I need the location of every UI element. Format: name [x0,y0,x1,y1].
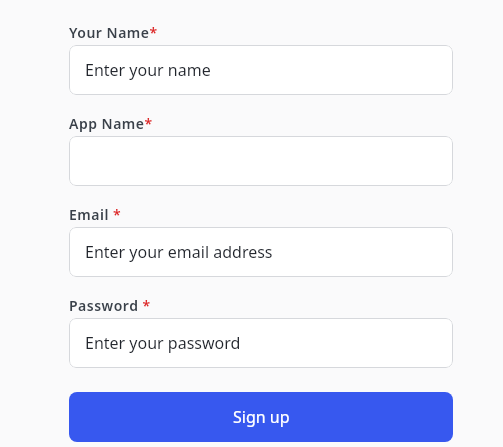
button[interactable] [69,136,453,186]
button[interactable]: Sign up [69,392,453,442]
staticText: Enter your email address [85,241,273,263]
staticText: Password * [69,296,151,315]
staticText: Sign up [233,406,290,428]
staticText: App Name* [69,114,153,133]
button[interactable]: Enter your email address [69,227,453,277]
button[interactable]: Enter your password [69,318,453,368]
staticText: Your Name* [69,23,158,42]
staticText: Enter your name [85,59,211,81]
staticText: Enter your password [85,332,241,354]
button[interactable]: Enter your name [69,45,453,95]
staticText: Email * [69,205,122,224]
